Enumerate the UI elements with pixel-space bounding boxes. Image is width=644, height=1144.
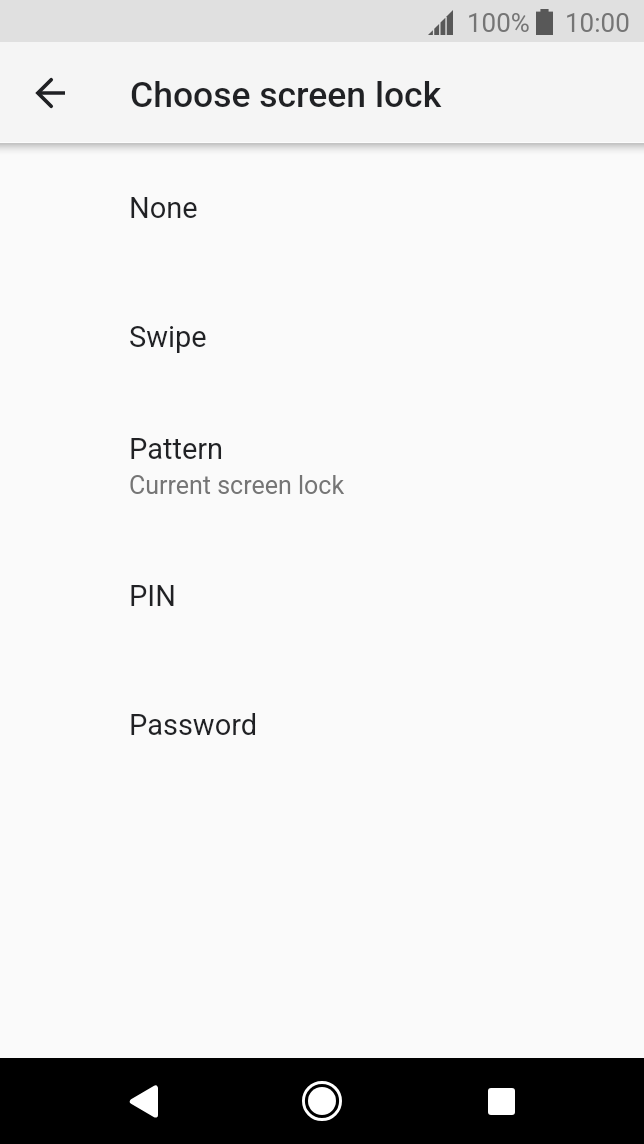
- button[interactable]: Recent apps: [468, 1068, 534, 1134]
- staticText: 10:00: [565, 8, 630, 38]
- staticText: 100%: [467, 8, 530, 38]
- staticText: None: [129, 191, 198, 225]
- staticText: Choose screen lock: [130, 74, 442, 116]
- button[interactable]: Pattern: [0, 401, 644, 531]
- staticText: Pattern: [129, 432, 224, 466]
- button[interactable]: Swipe: [0, 272, 644, 401]
- staticText: PIN: [129, 579, 176, 613]
- staticText: Swipe: [129, 320, 207, 354]
- button[interactable]: Back: [110, 1068, 176, 1134]
- button[interactable]: Home: [289, 1068, 355, 1134]
- staticText: Current screen lock: [129, 471, 345, 500]
- button[interactable]: None: [0, 143, 644, 272]
- button[interactable]: Password: [0, 660, 644, 789]
- staticText: Password: [129, 708, 258, 742]
- button[interactable]: PIN: [0, 531, 644, 660]
- button[interactable]: Navigate up: [14, 57, 86, 129]
